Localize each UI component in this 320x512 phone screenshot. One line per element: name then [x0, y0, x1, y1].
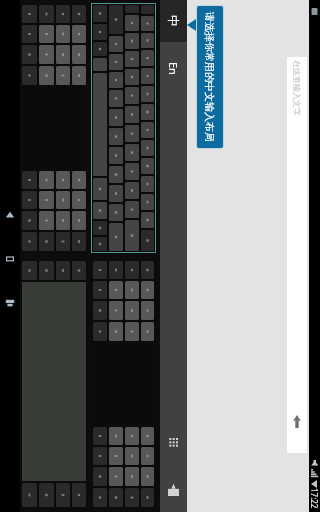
- button[interactable]: En: [160, 42, 187, 94]
- button[interactable]: 中: [160, 0, 187, 42]
- staticText: 在这里输入文字: [292, 60, 302, 116]
- button[interactable]: Home: [0, 237, 20, 281]
- staticText: 中: [166, 15, 181, 27]
- staticText: 请选择你常用的中文输入布局: [203, 12, 216, 142]
- button[interactable]: Back: [0, 193, 20, 237]
- button[interactable]: 在这里输入文字: [287, 57, 307, 453]
- button[interactable]: [92, 4, 155, 252]
- staticText: 17:22: [309, 488, 320, 509]
- button[interactable]: Recent apps: [0, 281, 20, 325]
- button[interactable]: [92, 260, 155, 508]
- button[interactable]: Sound settings: [160, 466, 187, 512]
- button[interactable]: 请选择你常用的中文输入布局: [197, 6, 223, 148]
- button[interactable]: [21, 260, 87, 508]
- button[interactable]: Keyboard layout: [160, 420, 187, 466]
- button[interactable]: [21, 4, 87, 252]
- staticText: En: [166, 62, 181, 75]
